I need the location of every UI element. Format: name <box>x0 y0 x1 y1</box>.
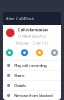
staticText: Call information <box>17 27 48 32</box>
button[interactable]: Add contact <box>36 49 43 56</box>
button[interactable]: Share <box>3 71 61 80</box>
button[interactable]: Details <box>3 81 61 90</box>
staticText: Alter Call/Block <box>6 16 34 21</box>
staticText: Share <box>14 73 24 78</box>
staticText: Remove from blocked <box>14 93 52 98</box>
button[interactable]: More <box>51 49 58 56</box>
staticText: Details <box>14 83 26 88</box>
button[interactable]: Call back <box>6 49 13 56</box>
button[interactable]: Remove from blocked <box>3 91 61 100</box>
staticText: Play call recording <box>14 63 46 68</box>
button[interactable]: Message <box>21 49 28 56</box>
button[interactable]: Play call recording <box>3 61 61 70</box>
staticText: +1 (863) 555-0127 <box>17 33 46 39</box>
staticText: Yesterday · 2 min 14 s <box>16 42 48 45</box>
